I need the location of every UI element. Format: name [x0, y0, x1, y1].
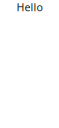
staticText: Hello — [16, 0, 42, 14]
